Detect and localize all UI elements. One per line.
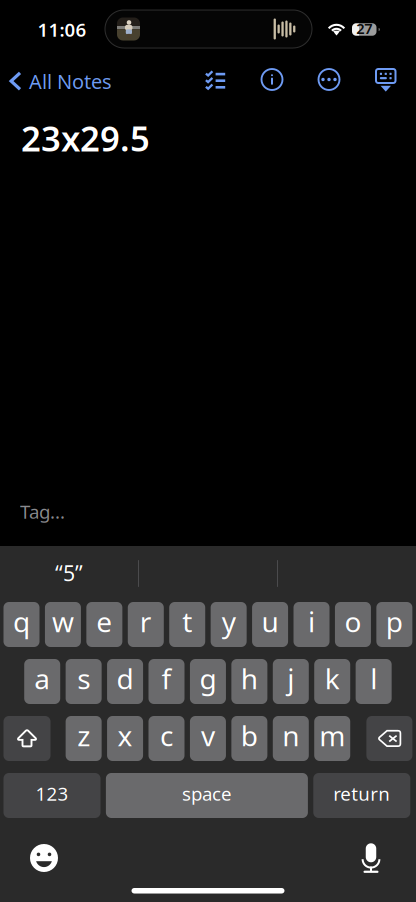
button[interactable]: return (313, 773, 410, 818)
button[interactable]: w (45, 602, 81, 647)
staticText: s (77, 660, 90, 697)
button[interactable]: i (293, 602, 329, 647)
staticText: b (241, 717, 258, 754)
button[interactable]: Delete (366, 716, 412, 761)
button[interactable]: u (252, 602, 288, 647)
staticText: space (182, 781, 232, 806)
button[interactable]: Dictate (353, 835, 389, 881)
staticText: f (161, 660, 171, 697)
staticText: c (160, 717, 173, 754)
staticText: d (117, 660, 134, 697)
button[interactable]: Note Info (252, 60, 291, 99)
staticText: k (325, 660, 340, 697)
staticText: u (262, 603, 279, 640)
staticText: z (77, 717, 90, 754)
button[interactable]: q (3, 602, 39, 647)
staticText: v (201, 717, 215, 754)
staticText: m (319, 717, 345, 754)
staticText: Tag... (20, 499, 65, 524)
button[interactable]: More (309, 60, 348, 99)
button[interactable]: c (148, 716, 184, 761)
button[interactable]: n (273, 716, 309, 761)
button[interactable]: space (106, 773, 308, 818)
button[interactable]: e (86, 602, 122, 647)
staticText: return (333, 781, 390, 806)
button[interactable]: b (231, 716, 267, 761)
button[interactable]: Shift (3, 716, 50, 761)
staticText: “5” (55, 559, 83, 587)
button[interactable]: f (148, 659, 184, 704)
button[interactable]: a (24, 659, 60, 704)
staticText: 27 (356, 19, 372, 38)
staticText: 23x29.5 (21, 115, 150, 161)
button[interactable]: p (376, 602, 412, 647)
staticText: w (52, 603, 74, 640)
button[interactable]: m (314, 716, 350, 761)
button[interactable]: h (231, 659, 267, 704)
staticText: t (182, 603, 192, 640)
button[interactable]: r (128, 602, 164, 647)
button[interactable]: t (169, 602, 205, 647)
staticText: i (308, 603, 315, 640)
staticText: e (96, 603, 112, 640)
staticText: l (370, 660, 377, 697)
staticText: r (140, 603, 152, 640)
staticText: o (344, 603, 361, 640)
button[interactable]: Checklist (196, 62, 235, 98)
staticText: y (222, 603, 236, 640)
button[interactable]: k (314, 659, 350, 704)
button[interactable]: Emoji (22, 836, 66, 880)
button[interactable]: j (273, 659, 309, 704)
button[interactable]: z (66, 716, 102, 761)
staticText: g (199, 660, 216, 697)
button[interactable]: All Notes (7, 62, 114, 101)
button[interactable]: y (211, 602, 247, 647)
button[interactable]: o (335, 602, 371, 647)
button[interactable]: g (190, 659, 226, 704)
staticText: n (282, 717, 299, 754)
button[interactable]: v (190, 716, 226, 761)
button[interactable]: l (356, 659, 392, 704)
button[interactable]: 123 (3, 773, 100, 818)
staticText: p (386, 603, 403, 640)
staticText: 123 (35, 781, 68, 806)
staticText: j (287, 660, 294, 697)
staticText: h (241, 660, 258, 697)
button[interactable]: d (107, 659, 143, 704)
button[interactable]: Hide Keyboard (367, 63, 404, 98)
button[interactable]: x (107, 716, 143, 761)
staticText: All Notes (29, 68, 112, 95)
staticText: 11:06 (37, 17, 86, 42)
staticText: a (34, 660, 50, 697)
staticText: q (13, 603, 30, 640)
button[interactable]: s (66, 659, 102, 704)
button[interactable]: “5” (0, 549, 138, 597)
staticText: x (118, 717, 133, 754)
